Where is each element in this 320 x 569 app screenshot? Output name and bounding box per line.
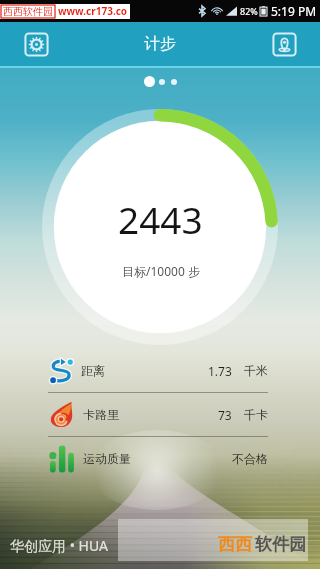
staticText: 5:19 PM (271, 3, 317, 19)
staticText: 距离 (81, 363, 105, 378)
staticText: 73 (218, 407, 232, 423)
staticText: 2443 (118, 194, 203, 244)
staticText: 计步 (144, 34, 176, 54)
staticText: www.cr173.com (58, 4, 130, 19)
staticText: 不合格 (232, 451, 268, 466)
button[interactable]: 距离 (0, 349, 320, 392)
staticText: 千米 (244, 363, 268, 378)
staticText: 1.73 (208, 363, 232, 379)
staticText: 目标/10000 步 (122, 263, 200, 279)
staticText: 82% (240, 5, 258, 17)
staticText: 千卡 (244, 407, 268, 422)
staticText: 华创应用 • HUA (10, 536, 108, 555)
staticText: 卡路里 (83, 407, 119, 422)
button[interactable]: Location (263, 23, 305, 65)
staticText: 西西软件园 (3, 5, 53, 18)
staticText: 运动质量 (83, 451, 131, 466)
staticText: 西西 (218, 534, 252, 555)
button[interactable]: Settings (15, 23, 57, 65)
staticText: 软件园 (255, 534, 306, 555)
button[interactable]: 卡路里 (0, 393, 320, 436)
button[interactable]: 运动质量 (0, 437, 320, 480)
